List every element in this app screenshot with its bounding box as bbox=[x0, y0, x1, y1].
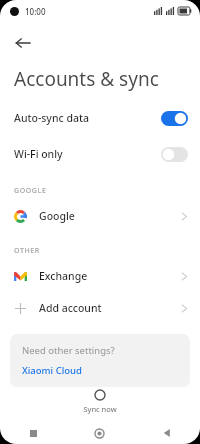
button[interactable]: Recents bbox=[0, 422, 66, 444]
staticText: 10:00 bbox=[25, 6, 46, 17]
staticText: Wi-Fi only bbox=[14, 147, 63, 161]
button[interactable]: Need other settings? bbox=[10, 334, 190, 387]
staticText: Google bbox=[39, 209, 75, 223]
button[interactable]: Add account bbox=[0, 292, 200, 324]
staticText: Need other settings? bbox=[22, 344, 115, 357]
button[interactable]: Exchange bbox=[0, 260, 200, 292]
button[interactable]: Back bbox=[133, 422, 200, 444]
button[interactable]: Sync now bbox=[0, 387, 200, 416]
staticText: GOOGLE bbox=[14, 186, 47, 196]
staticText: Add account bbox=[39, 301, 102, 315]
staticText: Xiaomi Cloud bbox=[22, 364, 82, 377]
staticText: Exchange bbox=[39, 269, 88, 283]
staticText: Auto-sync data bbox=[14, 111, 89, 125]
button[interactable]: Google bbox=[0, 200, 200, 232]
button[interactable]: Back bbox=[6, 26, 40, 60]
staticText: Sync now bbox=[83, 404, 117, 414]
staticText: OTHER bbox=[14, 246, 40, 256]
button[interactable]: Home bbox=[66, 422, 133, 444]
button[interactable]: Wi-Fi only bbox=[0, 136, 200, 172]
button[interactable]: Auto-sync data bbox=[0, 100, 200, 136]
staticText: Accounts & sync bbox=[14, 66, 159, 92]
